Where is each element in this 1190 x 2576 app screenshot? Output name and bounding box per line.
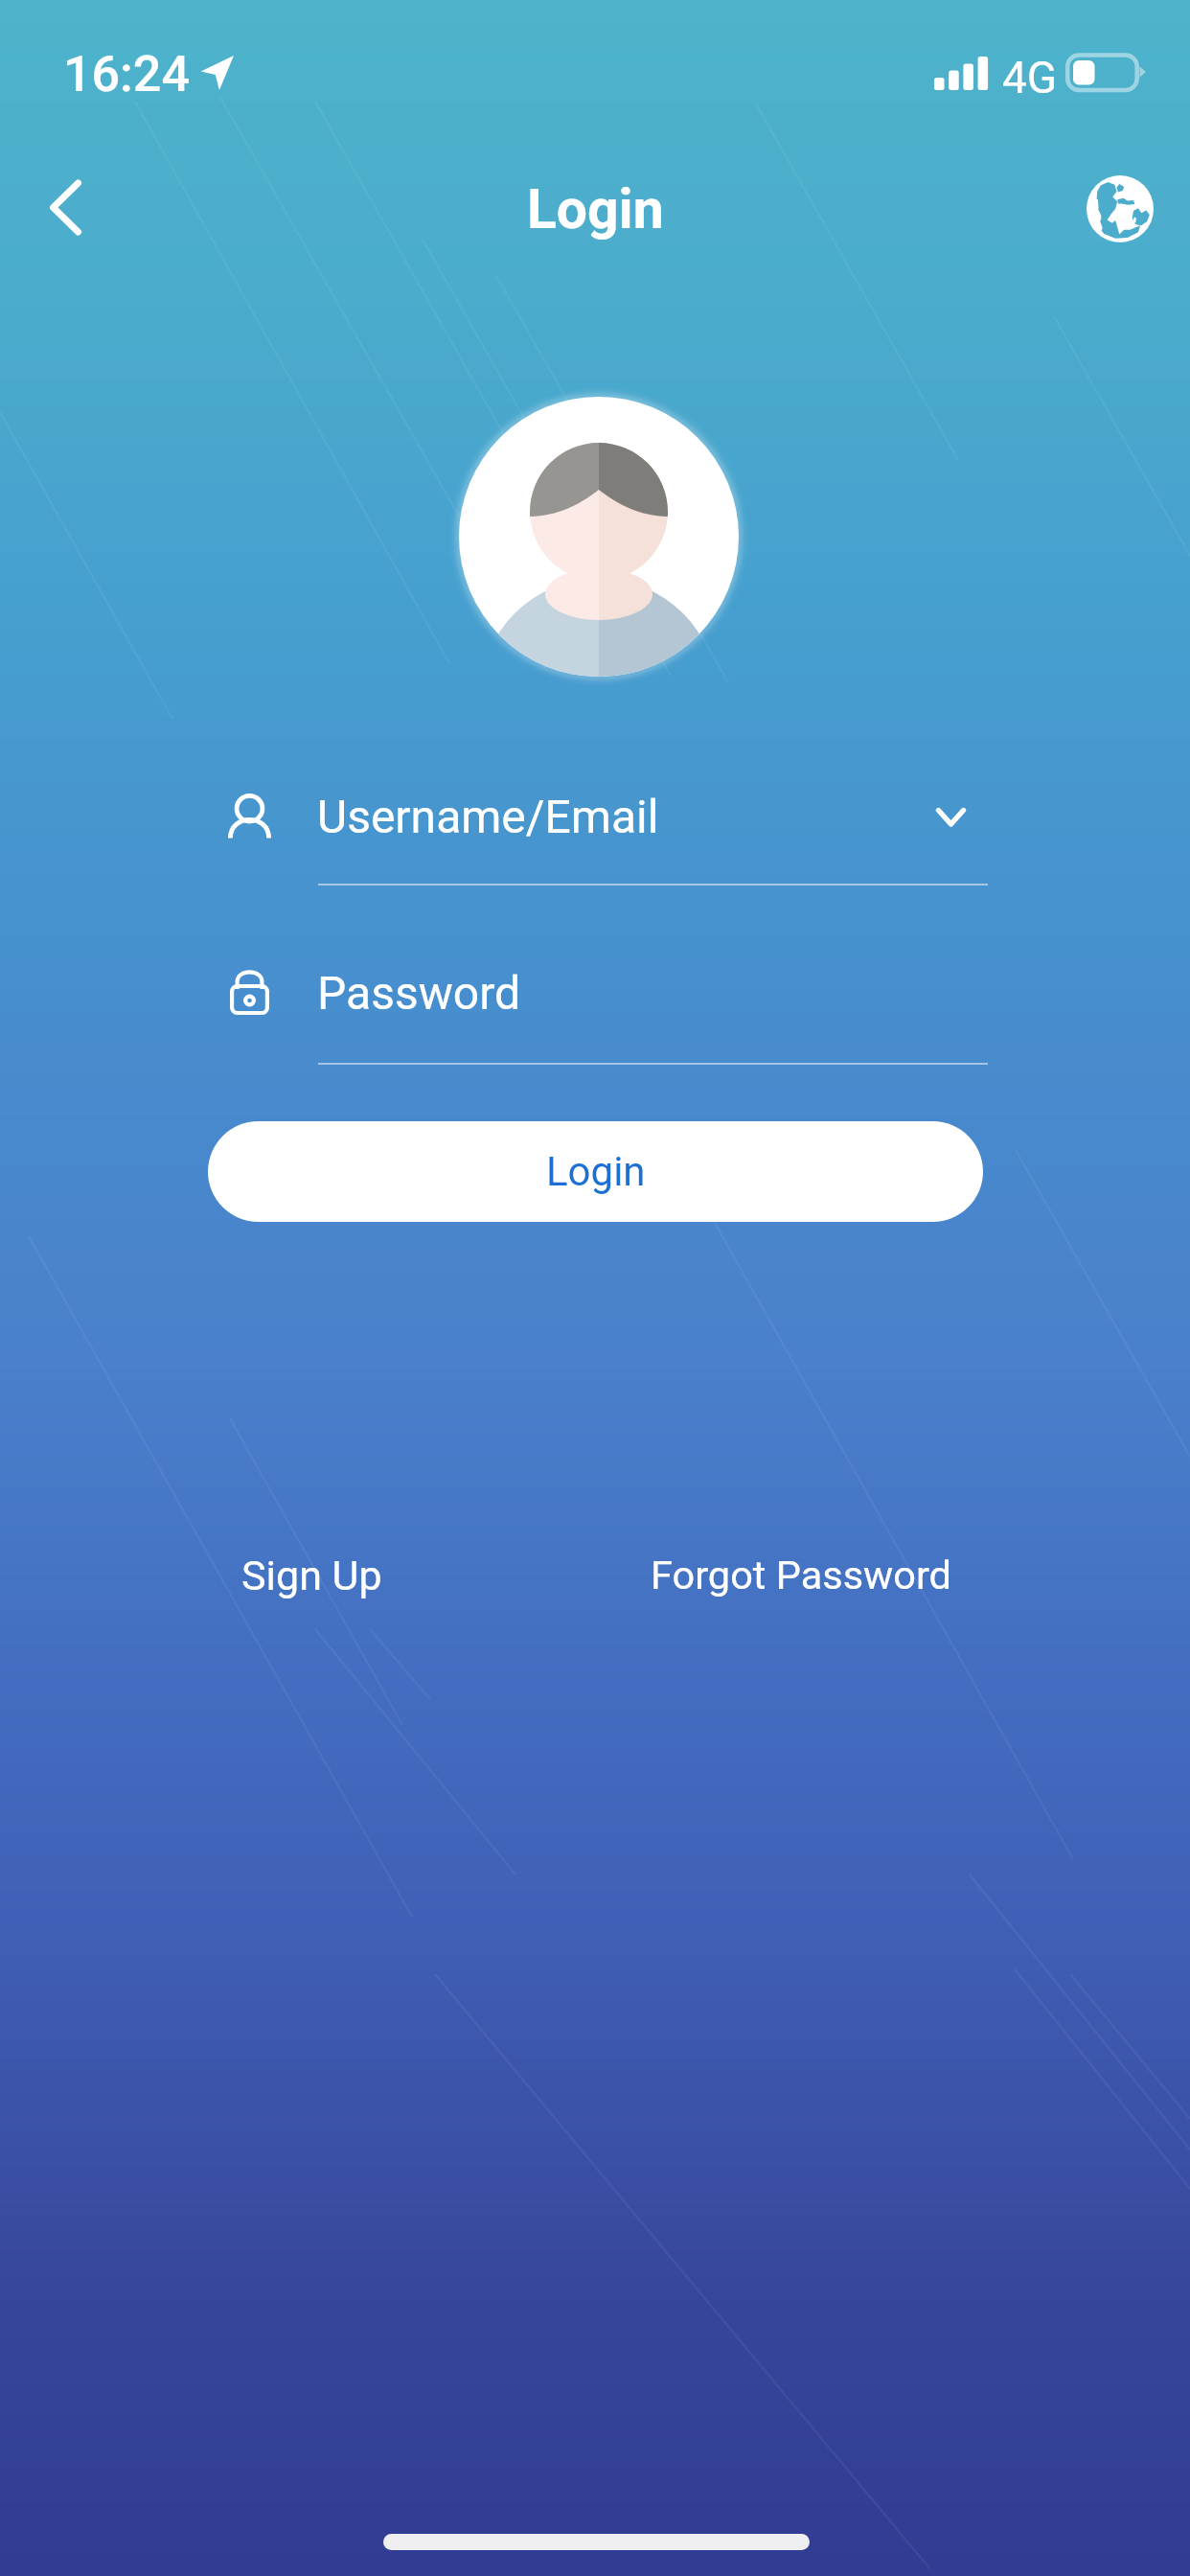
button[interactable]: Sign Up <box>225 1540 399 1611</box>
staticText: Login <box>546 1148 646 1195</box>
button[interactable]: Back <box>8 149 125 264</box>
button[interactable]: Language <box>1070 159 1170 259</box>
staticText: Password <box>317 966 521 1020</box>
staticText: 4G <box>1002 52 1058 103</box>
staticText: Username/Email <box>317 790 659 843</box>
button[interactable]: Forgot Password <box>634 1540 969 1610</box>
button[interactable]: Login <box>208 1121 983 1222</box>
button[interactable]: Show accounts <box>917 778 984 845</box>
staticText: 16:24 <box>63 45 190 103</box>
staticText: Login <box>527 177 664 241</box>
staticText: Sign Up <box>241 1552 382 1599</box>
staticText: Forgot Password <box>651 1552 952 1598</box>
